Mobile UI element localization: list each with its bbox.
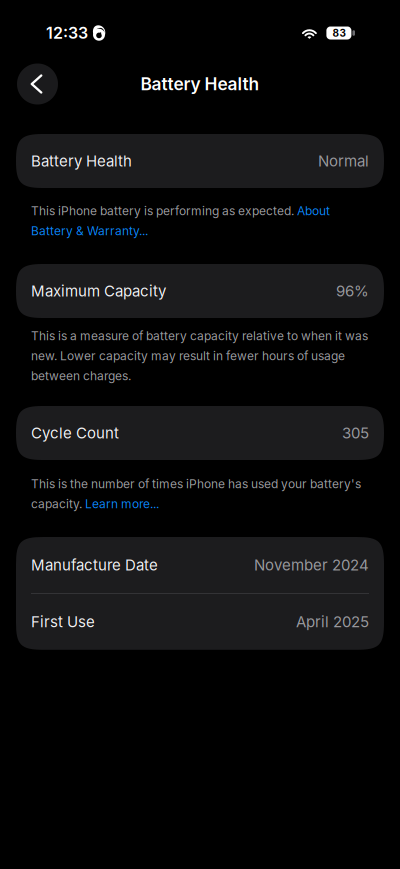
staticText: Maximum Capacity: [31, 282, 166, 300]
staticText: Learn more...: [85, 497, 159, 511]
staticText: This iPhone battery is performing as exp…: [31, 204, 297, 218]
staticText: between charges.: [31, 369, 131, 383]
button[interactable]: Maximum Capacity: [16, 264, 384, 318]
button[interactable]: First Use: [16, 594, 384, 650]
staticText: new. Lower capacity may result in fewer …: [31, 349, 345, 363]
staticText: This is the number of times iPhone has u…: [31, 477, 361, 491]
staticText: About: [297, 204, 330, 218]
button[interactable]: Manufacture Date: [16, 537, 384, 593]
staticText: Normal: [318, 152, 369, 170]
staticText: April 2025: [296, 613, 369, 631]
staticText: Battery & Warranty...: [31, 224, 148, 238]
staticText: capacity.: [31, 497, 85, 511]
staticText: 12:33: [46, 23, 88, 43]
staticText: 305: [342, 424, 369, 442]
staticText: Battery Health: [140, 73, 259, 94]
staticText: 83: [332, 27, 345, 39]
staticText: First Use: [31, 613, 95, 631]
staticText: Manufacture Date: [31, 556, 158, 574]
staticText: 96%: [336, 282, 369, 300]
staticText: Battery Health: [31, 152, 132, 170]
button[interactable]: Cycle Count: [16, 406, 384, 460]
button[interactable]: Back: [17, 63, 58, 104]
staticText: November 2024: [254, 556, 369, 574]
staticText: Cycle Count: [31, 424, 119, 442]
staticText: This is a measure of battery capacity re…: [31, 329, 368, 343]
button[interactable]: Battery Health: [16, 134, 384, 188]
